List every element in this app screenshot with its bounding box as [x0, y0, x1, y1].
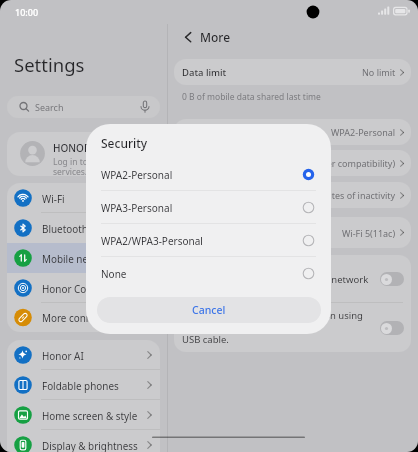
button[interactable]: Home screen & style	[7, 400, 160, 430]
staticText: HONOR ID	[53, 141, 104, 155]
staticText: Mobile network	[42, 252, 115, 265]
button[interactable]: None	[86, 257, 331, 290]
button[interactable]: Foldable phones	[7, 370, 160, 400]
button[interactable]: Maximum connection rate	[174, 217, 411, 248]
staticText: Foldable phones	[42, 379, 119, 392]
staticText: Display & brightness	[42, 439, 138, 452]
button[interactable]: Honor Connect	[7, 273, 160, 303]
staticText: 2.4 GHz (better compatibility)	[272, 157, 396, 169]
staticText: Log in to enjoy HONOR services.	[53, 156, 146, 176]
button[interactable]: Search	[7, 96, 160, 118]
staticText: Turn off hotspot	[182, 189, 255, 202]
button[interactable]: Allow other devices to detect this netwo…	[174, 255, 411, 303]
staticText: Data limit	[182, 66, 227, 79]
staticText: Wi-Fi 5(11ac)	[342, 227, 396, 239]
staticText: After 10 minutes of inactivity	[274, 189, 396, 201]
staticText: Allow other devices to detect this netwo…	[182, 273, 369, 286]
staticText: WPA2-Personal	[331, 126, 396, 138]
staticText: Search	[35, 101, 64, 113]
button[interactable]: Data limit	[174, 59, 411, 85]
staticText: Home screen & style	[42, 409, 138, 422]
staticText: Security	[101, 135, 148, 151]
staticText: WPA2-Personal	[101, 168, 173, 182]
button[interactable]: Turn off hotspot	[174, 182, 411, 208]
button[interactable]: Cancel	[97, 297, 321, 323]
button[interactable]: WPA2-Personal	[86, 158, 331, 191]
button[interactable]: HONOR ID	[7, 132, 160, 176]
staticText: Maximum connection rate	[182, 226, 300, 239]
staticText: Wi-Fi	[42, 192, 65, 205]
staticText: None	[101, 267, 127, 281]
staticText: Settings	[14, 52, 85, 77]
button[interactable]: AP band	[174, 150, 411, 176]
button[interactable]: WPA2/WPA3-Personal	[86, 224, 331, 257]
button[interactable]: Display & brightness	[7, 430, 160, 452]
staticText: No limit	[362, 66, 396, 78]
staticText: Honor AI	[42, 349, 84, 362]
staticText: WPA2/WPA3-Personal	[101, 234, 203, 248]
staticText: Bluetooth	[42, 222, 88, 235]
staticText: Cancel	[192, 303, 226, 317]
button[interactable]: Bluetooth	[7, 213, 160, 243]
button[interactable]: More connections	[7, 303, 160, 332]
button[interactable]: Mobile network	[7, 243, 160, 273]
staticText: Share phone's Internet connection using …	[182, 309, 369, 346]
staticText: More connections	[42, 311, 126, 324]
staticText: 0 B of mobile data shared last time	[182, 91, 321, 103]
staticText: WPA3-Personal	[101, 201, 173, 215]
staticText: 10:00	[15, 6, 39, 18]
button[interactable]: WPA3-Personal	[86, 191, 331, 224]
staticText: More	[200, 29, 231, 45]
button[interactable]: Wi-Fi	[7, 183, 160, 213]
button[interactable]: Honor AI	[7, 340, 160, 370]
button[interactable]: Share phone's Internet connection using …	[174, 303, 411, 352]
staticText: Honor Connect	[42, 282, 113, 295]
button[interactable]: Back	[181, 27, 231, 47]
button[interactable]: Security	[174, 119, 411, 145]
